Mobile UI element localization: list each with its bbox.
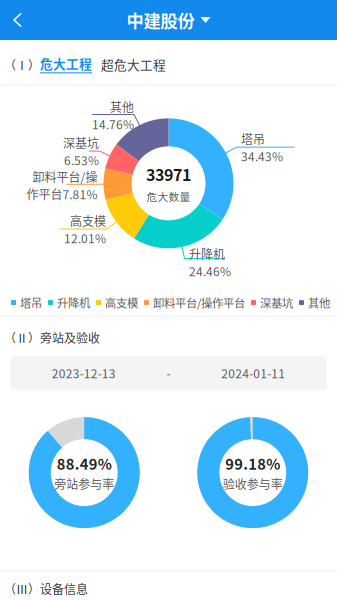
button[interactable]: Back	[0, 1, 37, 38]
staticText: 其他	[110, 98, 134, 115]
staticText: 高支模	[70, 212, 106, 229]
staticText: （Ⅰ）	[4, 56, 40, 73]
staticText: 6.53%	[64, 151, 99, 169]
button[interactable]: 2023-12-13	[10, 356, 327, 390]
button[interactable]: 危大工程	[40, 54, 92, 73]
staticText: 高支模	[105, 294, 138, 311]
button[interactable]: 中建股份	[120, 0, 216, 41]
staticText: 危大工程	[40, 54, 92, 72]
staticText: 2023-12-13	[52, 364, 116, 382]
staticText: 深基坑	[63, 134, 99, 151]
staticText: 24.46%	[189, 262, 231, 280]
staticText: 超危大工程	[101, 55, 166, 73]
staticText: 33971	[146, 162, 191, 186]
staticText: 作平台7.81%	[26, 185, 97, 203]
staticText: 塔吊	[20, 294, 42, 311]
staticText: 卸料平台/操作平台	[153, 294, 245, 311]
staticText: 塔吊	[241, 130, 265, 147]
staticText: 88.49%	[57, 453, 112, 474]
staticText: 卸料平台/操	[32, 168, 97, 185]
staticText: 99.18%	[225, 453, 280, 474]
staticText: -	[166, 364, 170, 382]
staticText: （Ⅱ）旁站及验收	[4, 329, 100, 346]
staticText: 危大数量	[146, 189, 190, 204]
staticText: 升降机	[57, 294, 90, 311]
staticText: 34.43%	[241, 147, 283, 165]
staticText: 其他	[308, 294, 330, 311]
button[interactable]: 超危大工程	[92, 55, 166, 73]
staticText: 2024-01-11	[221, 364, 285, 382]
staticText: 12.01%	[64, 229, 106, 247]
staticText: 旁站参与率	[54, 475, 114, 492]
staticText: 中建股份	[126, 7, 194, 33]
staticText: 升降机	[189, 245, 225, 262]
staticText: 14.76%	[92, 115, 134, 133]
staticText: 深基坑	[260, 294, 293, 311]
staticText: 验收参与率	[223, 475, 283, 492]
staticText: （Ⅲ）设备信息	[4, 580, 88, 597]
